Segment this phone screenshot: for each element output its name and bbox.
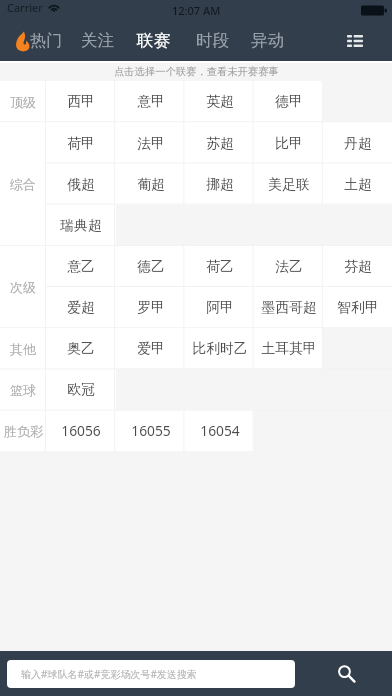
button[interactable]: 美足联 [254, 164, 323, 205]
staticText: 爱甲 [137, 340, 165, 357]
staticText: 英超 [206, 93, 234, 110]
button[interactable]: 芬超 [323, 246, 392, 287]
button[interactable]: 挪超 [185, 164, 254, 205]
button[interactable]: 智利甲 [323, 287, 392, 328]
staticText: 瑞典超 [60, 217, 102, 234]
staticText: 荷乙 [206, 258, 234, 275]
staticText: 智利甲 [337, 299, 379, 316]
button[interactable]: 异动 [247, 20, 288, 61]
staticText: 时段 [196, 30, 229, 51]
button[interactable]: 荷乙 [185, 246, 254, 287]
staticText: 土耳其甲 [261, 340, 317, 357]
button[interactable]: 墨西哥超 [254, 287, 323, 328]
staticText: 点击选择一个联赛，查看未开赛赛事 [114, 65, 279, 78]
button[interactable]: 顶级 [0, 81, 46, 122]
staticText: 比利时乙 [192, 340, 248, 357]
staticText: 芬超 [344, 258, 372, 275]
staticText: 输入#球队名#或#竞彩场次号#发送搜索 [21, 667, 197, 681]
button[interactable]: 德乙 [116, 246, 185, 287]
staticText: 意甲 [137, 93, 165, 110]
staticText: 葡超 [137, 176, 165, 193]
button[interactable]: 次级 [0, 246, 46, 328]
staticText: 意乙 [67, 258, 95, 275]
button[interactable]: 土超 [323, 164, 392, 205]
button[interactable]: 奥乙 [46, 328, 116, 369]
staticText: 挪超 [206, 176, 234, 193]
button[interactable]: 胜负彩 [0, 410, 46, 451]
staticText: 土超 [344, 176, 372, 193]
staticText: 俄超 [67, 176, 95, 193]
staticText: 顶级 [10, 94, 36, 110]
button[interactable]: Search [295, 651, 392, 696]
staticText: 其他 [10, 341, 36, 357]
staticText: 综合 [10, 176, 36, 192]
button[interactable]: 法甲 [116, 122, 185, 164]
staticText: 西甲 [67, 93, 95, 110]
staticText: 篮球 [10, 382, 36, 398]
button[interactable]: 比利时乙 [185, 328, 254, 369]
staticText: 美足联 [268, 176, 310, 193]
button[interactable]: Menu [338, 20, 372, 61]
button[interactable]: 意乙 [46, 246, 116, 287]
staticText: 16054 [200, 421, 240, 440]
staticText: 关注 [81, 30, 114, 51]
button[interactable]: 意甲 [116, 81, 185, 122]
button[interactable]: 罗甲 [116, 287, 185, 328]
button[interactable]: 爱超 [46, 287, 116, 328]
staticText: 16055 [131, 421, 171, 440]
staticText: 罗甲 [137, 299, 165, 316]
button[interactable]: 西甲 [46, 81, 116, 122]
button[interactable]: 联赛 [133, 20, 174, 61]
button[interactable]: 荷甲 [46, 122, 116, 164]
button[interactable]: 英超 [185, 81, 254, 122]
button[interactable]: 土耳其甲 [254, 328, 323, 369]
button[interactable]: 瑞典超 [46, 205, 116, 246]
button[interactable]: 德甲 [254, 81, 323, 122]
staticText: 法乙 [275, 258, 303, 275]
staticText: 热门 [30, 31, 62, 51]
button[interactable]: 篮球 [0, 369, 46, 410]
button[interactable]: 法乙 [254, 246, 323, 287]
button[interactable]: 丹超 [323, 122, 392, 164]
button[interactable]: 欧冠 [46, 369, 116, 410]
staticText: 德甲 [275, 93, 303, 110]
staticText: 16056 [61, 421, 101, 440]
staticText: 异动 [251, 30, 284, 51]
button[interactable]: 葡超 [116, 164, 185, 205]
button[interactable]: 综合 [0, 122, 46, 246]
button[interactable]: 爱甲 [116, 328, 185, 369]
button[interactable]: 16056 [46, 410, 116, 451]
button[interactable]: 苏超 [185, 122, 254, 164]
staticText: 丹超 [344, 135, 372, 152]
button[interactable]: 关注 [77, 20, 118, 61]
staticText: Carrier [7, 0, 43, 15]
staticText: 荷甲 [67, 135, 95, 152]
staticText: 12:07 AM [172, 3, 221, 18]
staticText: 爱超 [67, 299, 95, 316]
staticText: 次级 [10, 279, 36, 295]
staticText: 胜负彩 [4, 423, 43, 439]
button[interactable]: 其他 [0, 328, 46, 369]
button[interactable]: 比甲 [254, 122, 323, 164]
staticText: 欧冠 [67, 381, 95, 398]
staticText: 阿甲 [206, 299, 234, 316]
button[interactable]: 阿甲 [185, 287, 254, 328]
staticText: 法甲 [137, 135, 165, 152]
staticText: 苏超 [206, 135, 234, 152]
button[interactable]: 俄超 [46, 164, 116, 205]
staticText: 联赛 [137, 30, 170, 51]
button[interactable]: 时段 [192, 20, 233, 61]
staticText: 墨西哥超 [261, 299, 317, 316]
button[interactable]: 输入#球队名#或#竞彩场次号#发送搜索 [7, 660, 295, 688]
staticText: 德乙 [137, 258, 165, 275]
button[interactable]: 16055 [116, 410, 185, 451]
button[interactable]: 热门 [12, 20, 66, 61]
button[interactable]: 16054 [185, 410, 254, 451]
staticText: 比甲 [275, 135, 303, 152]
staticText: 奥乙 [67, 340, 95, 357]
